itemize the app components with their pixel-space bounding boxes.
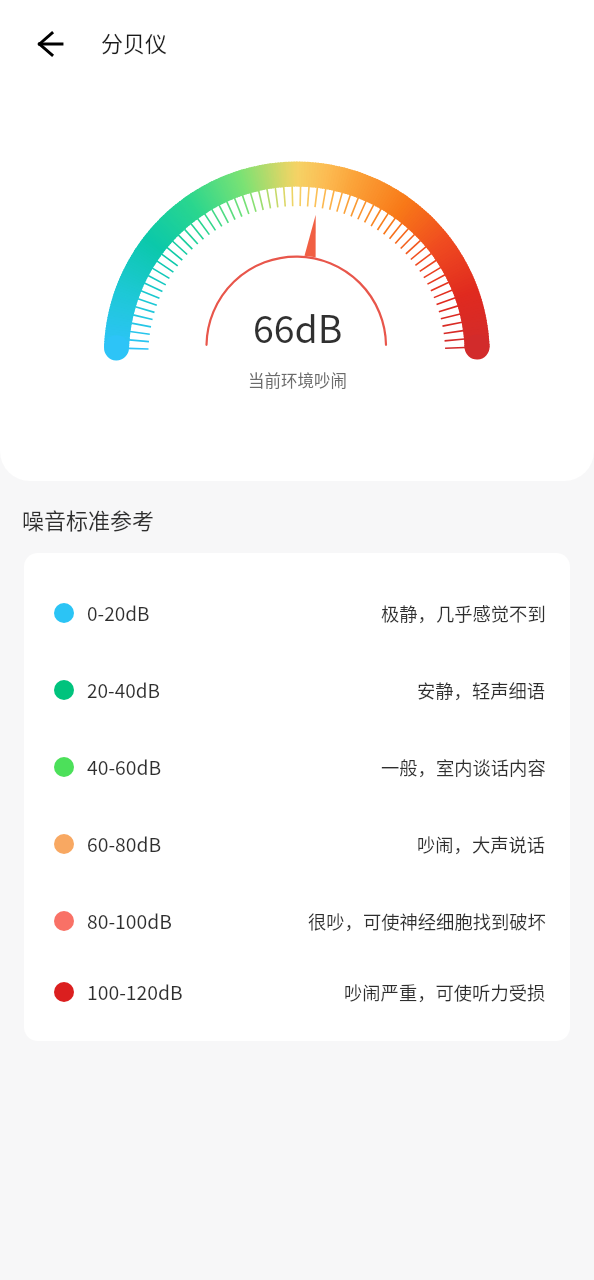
staticText: 吵闹严重，可使听力受损 <box>344 979 546 1005</box>
staticText: 60-80dB <box>87 830 162 858</box>
button[interactable]: 80-100dB <box>24 882 570 959</box>
staticText: 很吵，可使神经细胞找到破坏 <box>308 908 546 934</box>
staticText: 安静，轻声细语 <box>417 677 546 703</box>
button[interactable]: Back <box>32 24 72 64</box>
staticText: 100-120dB <box>87 978 183 1006</box>
button[interactable]: 0-20dB <box>24 574 570 651</box>
staticText: 噪音标准参考 <box>22 503 155 535</box>
button[interactable]: 60-80dB <box>24 805 570 882</box>
staticText: 40-60dB <box>87 753 162 781</box>
button[interactable]: 100-120dB <box>24 959 570 1025</box>
button[interactable]: 40-60dB <box>24 728 570 805</box>
staticText: 66dB <box>253 299 343 353</box>
staticText: 极静，几乎感觉不到 <box>381 600 546 626</box>
staticText: 20-40dB <box>87 676 161 704</box>
staticText: 0-20dB <box>87 599 150 627</box>
staticText: 当前环境吵闹 <box>248 368 347 392</box>
button[interactable]: 20-40dB <box>24 651 570 728</box>
staticText: 一般，室内谈话内容 <box>381 754 546 780</box>
staticText: 吵闹，大声说话 <box>417 831 546 857</box>
staticText: 80-100dB <box>87 907 172 935</box>
staticText: 分贝仪 <box>101 26 168 58</box>
